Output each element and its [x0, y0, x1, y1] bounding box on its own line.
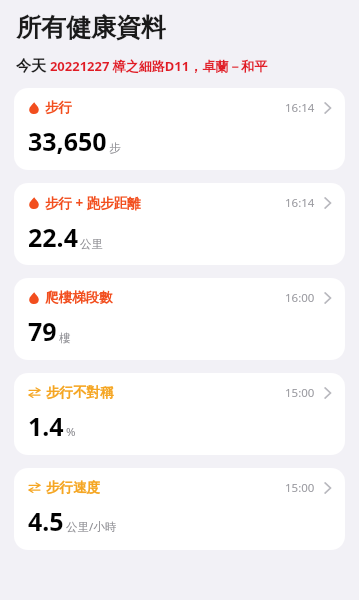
staticText: 79: [28, 314, 57, 348]
staticText: 步: [109, 141, 121, 155]
staticText: 今天 20221227 樟之細路D11，卓蘭－和平: [16, 55, 268, 75]
button[interactable]: 爬樓梯段數: [14, 278, 345, 360]
staticText: 步行: [45, 99, 72, 116]
staticText: 16:14: [285, 100, 315, 116]
staticText: 步行速度: [46, 479, 100, 496]
button[interactable]: 步行: [14, 88, 345, 170]
staticText: 15:00: [285, 385, 315, 401]
staticText: %: [66, 424, 76, 440]
button[interactable]: 步行速度: [14, 468, 345, 550]
staticText: 16:00: [285, 290, 315, 306]
button[interactable]: 步行不對稱: [14, 373, 345, 455]
staticText: 樓: [59, 331, 71, 345]
staticText: 所有健康資料: [16, 12, 166, 43]
staticText: 步行 + 跑步距離: [45, 194, 141, 212]
staticText: 公里/小時: [66, 519, 117, 535]
staticText: 步行不對稱: [46, 384, 114, 401]
staticText: 15:00: [285, 480, 315, 496]
button[interactable]: 步行 + 跑步距離: [14, 183, 345, 265]
staticText: 公里: [80, 237, 103, 251]
staticText: 33,650: [28, 124, 107, 158]
staticText: 爬樓梯段數: [45, 289, 113, 306]
staticText: 1.4: [28, 409, 64, 443]
staticText: 4.5: [28, 504, 64, 538]
staticText: 22.4: [28, 220, 78, 254]
staticText: 16:14: [285, 195, 315, 211]
